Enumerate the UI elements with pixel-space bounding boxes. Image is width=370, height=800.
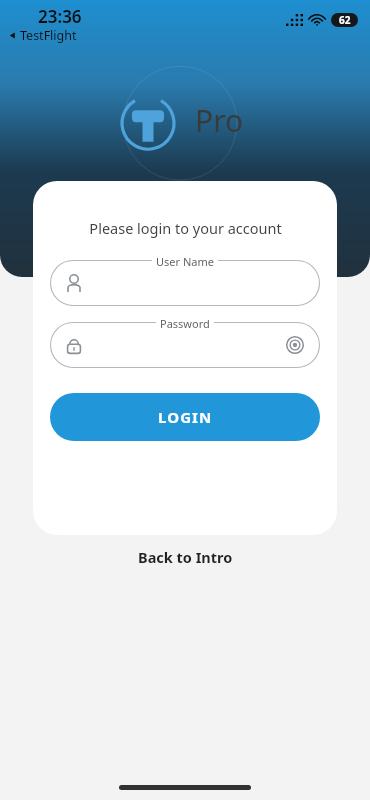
staticText: 23:36 <box>38 5 82 28</box>
button[interactable]: Toggle password visibility <box>284 334 306 356</box>
staticText: User Name <box>156 254 214 269</box>
staticText: Back to Intro <box>138 547 233 567</box>
button[interactable]: LOGIN <box>50 393 320 441</box>
button[interactable]: Back to Intro <box>0 541 370 573</box>
staticText: Password <box>160 316 210 331</box>
staticText: 62 <box>339 13 351 27</box>
staticText: TestFlight <box>20 27 77 44</box>
staticText: Pro <box>195 100 244 141</box>
staticText: Please login to your account <box>89 218 282 238</box>
staticText: LOGIN <box>158 407 213 427</box>
